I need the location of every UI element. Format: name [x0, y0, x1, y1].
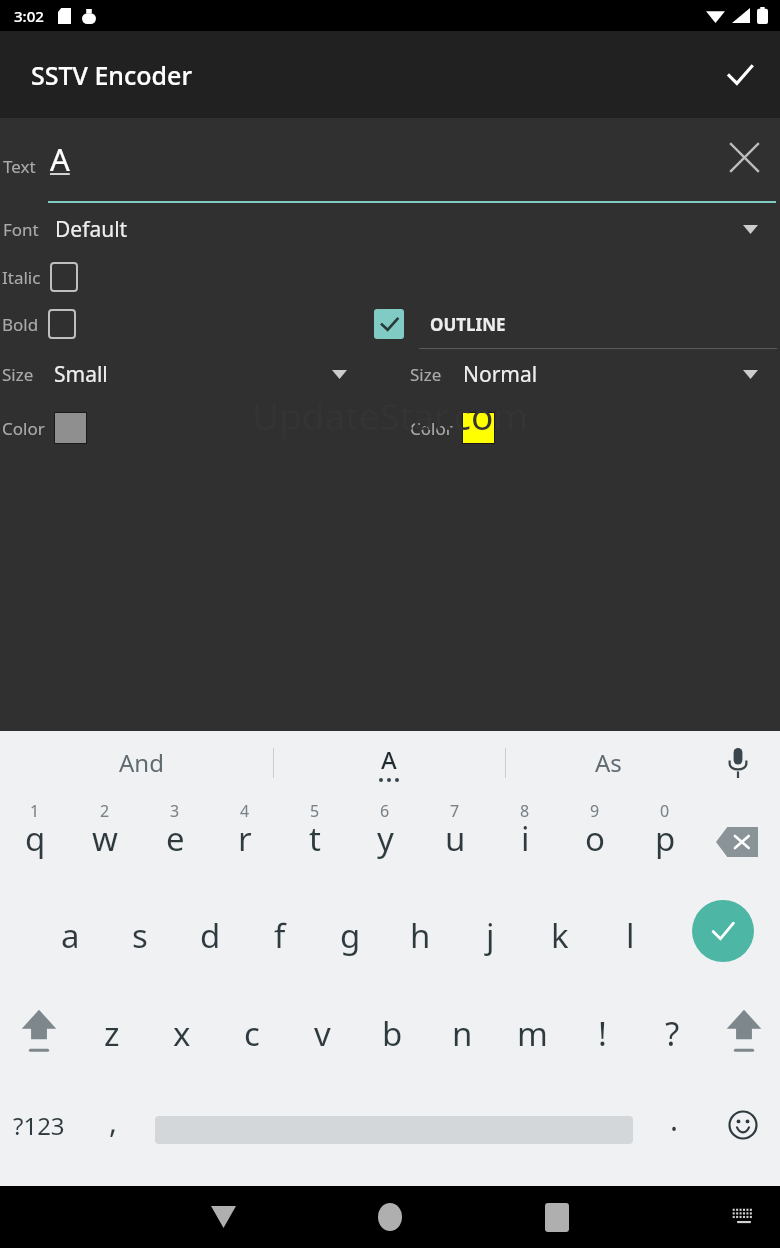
button[interactable]: 8 [492, 794, 558, 892]
staticText: 4 [240, 800, 250, 822]
button[interactable]: j [457, 892, 523, 990]
button[interactable]: Bold [0, 309, 76, 339]
button[interactable]: Emoji [713, 1094, 773, 1156]
staticText: Italic [2, 266, 41, 289]
staticText: 5 [310, 800, 320, 822]
button[interactable]: ! [569, 990, 635, 1088]
button[interactable]: x [149, 990, 215, 1088]
staticText: d [200, 913, 221, 958]
staticText: ? [665, 1011, 680, 1056]
button[interactable]: , [82, 1094, 144, 1156]
staticText: a [61, 913, 80, 958]
staticText: z [104, 1011, 120, 1056]
staticText: 3:02 [14, 6, 44, 26]
button[interactable]: a [37, 892, 103, 990]
button[interactable]: h [387, 892, 453, 990]
staticText: Bold [2, 313, 39, 336]
button[interactable]: b [359, 990, 425, 1088]
staticText: A [381, 743, 397, 776]
button[interactable]: 6 [352, 794, 418, 892]
button[interactable]: n [429, 990, 495, 1088]
staticText: 8 [520, 800, 530, 822]
staticText: m [517, 1011, 548, 1056]
button[interactable]: m [499, 990, 565, 1088]
button[interactable]: Enter [692, 900, 754, 962]
button[interactable]: f [247, 892, 313, 990]
staticText: Font [3, 218, 39, 241]
staticText: k [551, 913, 569, 958]
button[interactable]: Italic [0, 262, 78, 292]
button[interactable]: Shift [8, 996, 70, 1066]
staticText: Color [410, 417, 453, 440]
button[interactable]: Font [0, 203, 780, 256]
staticText: r [238, 816, 252, 861]
button[interactable]: v [289, 990, 355, 1088]
staticText: , [109, 1101, 118, 1142]
staticText: 2 [100, 800, 110, 822]
staticText: y [377, 816, 394, 861]
button[interactable]: Clear text [717, 130, 771, 184]
button[interactable]: 2 [72, 794, 138, 892]
button[interactable]: Color [0, 412, 87, 444]
button[interactable]: Color [410, 412, 495, 444]
button[interactable]: 7 [422, 794, 488, 892]
button[interactable]: z [79, 990, 145, 1088]
staticText: x [173, 1011, 191, 1056]
staticText: Size [2, 363, 34, 386]
button[interactable]: And [10, 731, 272, 794]
staticText: 6 [380, 800, 390, 822]
button[interactable]: 4 [212, 794, 278, 892]
staticText: And [119, 746, 164, 779]
staticText: 1 [30, 800, 40, 822]
staticText: ! [598, 1011, 607, 1056]
staticText: UpdateStar.com [252, 390, 528, 440]
button[interactable]: Back [193, 1187, 253, 1247]
button[interactable]: 3 [142, 794, 208, 892]
button[interactable]: Voice input [710, 735, 766, 791]
button[interactable]: Recents [527, 1187, 587, 1247]
button[interactable]: . [645, 1094, 703, 1156]
button[interactable]: A [274, 731, 504, 794]
button[interactable]: 9 [562, 794, 628, 892]
staticText: Default [55, 215, 128, 244]
button[interactable]: As [506, 731, 711, 794]
button[interactable]: Confirm [714, 49, 766, 101]
staticText: A [50, 138, 70, 180]
staticText: 0 [660, 800, 670, 822]
button[interactable]: ? [639, 990, 705, 1088]
staticText: Normal [463, 360, 538, 389]
staticText: 3 [170, 800, 180, 822]
button[interactable]: 0 [632, 794, 698, 892]
staticText: w [92, 816, 118, 861]
staticText: n [452, 1011, 473, 1056]
button[interactable]: k [527, 892, 593, 990]
staticText: g [340, 913, 361, 958]
staticText: o [585, 816, 605, 861]
staticText: i [521, 816, 530, 861]
staticText: Color [2, 417, 45, 440]
staticText: t [309, 816, 321, 861]
button[interactable]: Backspace [706, 814, 768, 870]
button[interactable]: OUTLINE [374, 309, 506, 339]
button[interactable]: 1 [2, 794, 68, 892]
staticText: SSTV Encoder [31, 58, 193, 92]
button[interactable]: Switch keyboard [718, 1191, 770, 1243]
button[interactable]: c [219, 990, 285, 1088]
button[interactable]: s [107, 892, 173, 990]
staticText: j [486, 913, 495, 958]
staticText: v [314, 1011, 331, 1056]
button[interactable]: Size [410, 349, 780, 400]
button[interactable]: Shift [713, 996, 775, 1066]
button[interactable]: 5 [282, 794, 348, 892]
button[interactable]: ?123 [2, 1094, 76, 1156]
staticText: h [410, 913, 431, 958]
button[interactable]: Home [360, 1187, 420, 1247]
button[interactable]: d [177, 892, 243, 990]
staticText: Size [410, 363, 442, 386]
button[interactable]: Size [0, 349, 390, 400]
button[interactable]: l [597, 892, 663, 990]
staticText: e [166, 816, 185, 861]
button[interactable]: g [317, 892, 383, 990]
staticText: q [25, 816, 46, 861]
